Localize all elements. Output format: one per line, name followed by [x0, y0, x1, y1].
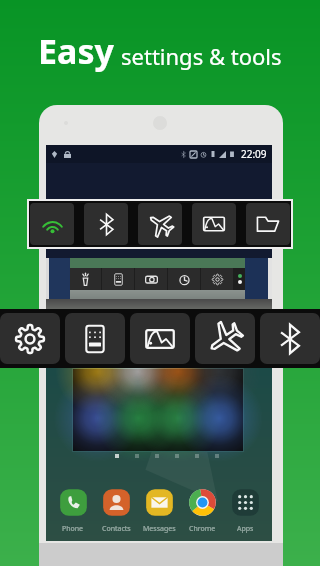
staticText: Messages [143, 524, 176, 534]
button[interactable]: Bluetooth [84, 203, 128, 245]
button[interactable]: Gallery [192, 203, 236, 245]
staticText: 22:09 [241, 147, 267, 161]
button[interactable]: Messages [139, 488, 179, 534]
staticText: Easy [38, 28, 114, 74]
staticText: Apps [237, 524, 254, 534]
button[interactable] [201, 268, 233, 290]
button[interactable]: Airplane mode [195, 313, 255, 364]
button[interactable]: Contacts [96, 488, 136, 534]
button[interactable]: Gallery [130, 313, 190, 364]
staticText: Phone [62, 524, 84, 534]
button[interactable]: Bluetooth [260, 313, 320, 364]
button[interactable]: Wi-Fi [30, 203, 74, 245]
button[interactable]: Apps [225, 488, 265, 534]
button[interactable] [70, 268, 101, 290]
button[interactable]: Files [246, 203, 290, 245]
button[interactable]: Chrome [182, 488, 222, 534]
staticText: Chrome [189, 524, 216, 534]
button[interactable]: Phone [53, 488, 93, 534]
button[interactable] [168, 268, 200, 290]
staticText: settings & tools [121, 41, 282, 71]
button[interactable] [102, 268, 134, 290]
button[interactable]: Calculator [65, 313, 125, 364]
button[interactable]: Airplane mode [138, 203, 182, 245]
button[interactable] [135, 268, 167, 290]
button[interactable]: Settings [0, 313, 60, 364]
staticText: Contacts [102, 524, 131, 534]
